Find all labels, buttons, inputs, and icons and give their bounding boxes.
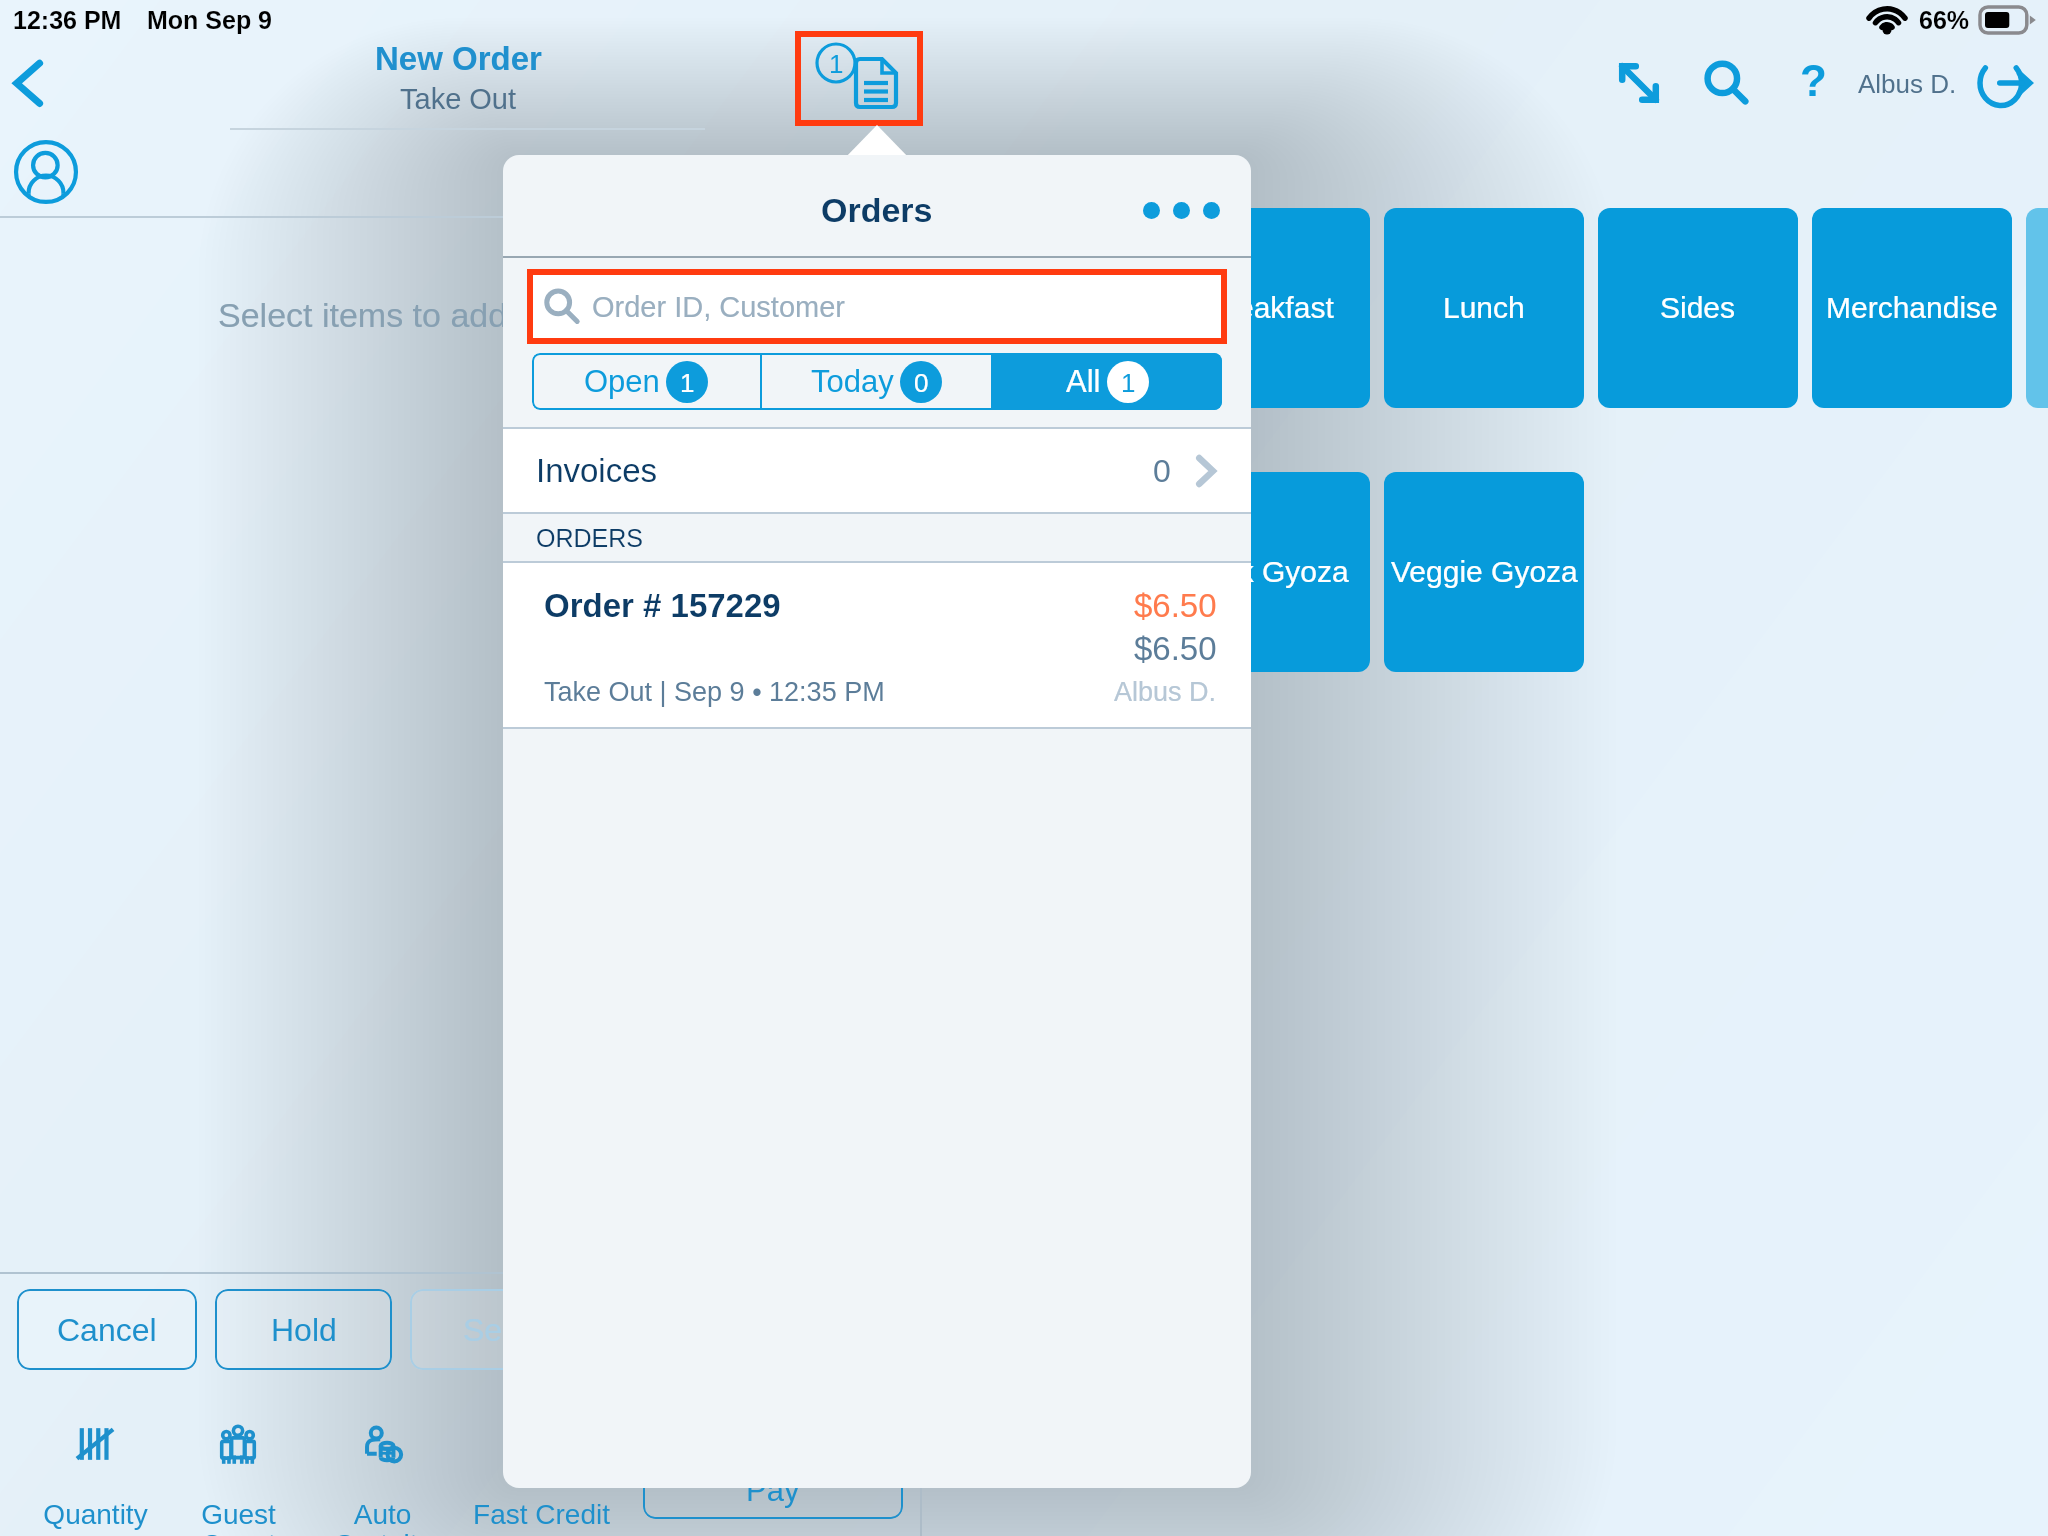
staticText: Albus D. <box>1114 677 1217 707</box>
button[interactable]: Expand <box>1609 53 1669 113</box>
staticText: Take Out | Sep 9 • 12:35 PM <box>544 677 885 707</box>
button[interactable] <box>1170 472 1370 672</box>
staticText: Veggie Gyoza <box>1391 555 1578 589</box>
staticText: 66% <box>1919 6 1970 34</box>
button[interactable]: Fast Credit <box>466 1422 616 1530</box>
staticText: 12:36 PM <box>13 6 122 34</box>
button[interactable]: Cancel <box>17 1289 197 1370</box>
staticText: Pay <box>746 1473 800 1508</box>
button[interactable]: Send <box>410 1289 590 1370</box>
staticText: 1 <box>1121 368 1136 397</box>
staticText: Pork Gyoza <box>1192 555 1349 589</box>
staticText: Orders <box>821 191 933 229</box>
staticText: Guest Count <box>201 1499 276 1536</box>
staticText: 0 <box>1153 453 1171 489</box>
staticText: Select items to add <box>218 296 508 334</box>
button[interactable]: Open orders <box>795 31 923 126</box>
staticText: Send <box>463 1312 538 1348</box>
button[interactable] <box>1170 208 1370 408</box>
staticText: ORDERS <box>536 524 643 552</box>
button[interactable]: More categories <box>2026 208 2048 408</box>
button[interactable] <box>1384 208 1584 408</box>
staticText: Lunch <box>1443 291 1525 325</box>
button[interactable]: Help <box>1783 50 1843 110</box>
button[interactable]: Quantity <box>20 1422 170 1530</box>
button[interactable]: Hold <box>215 1289 392 1370</box>
button[interactable]: Customer <box>14 140 78 204</box>
staticText: Open <box>584 364 660 399</box>
staticText: Order # 157229 <box>544 587 781 624</box>
other: Log out <box>1975 53 2037 113</box>
button[interactable]: Albus D. <box>1858 53 2037 113</box>
staticText: ? <box>1800 56 1827 105</box>
staticText: Sides <box>1660 291 1736 325</box>
staticText: Take Out <box>400 83 517 115</box>
staticText: $6.50 <box>1134 630 1217 667</box>
button[interactable]: Order # 157229 <box>503 563 1251 727</box>
button[interactable]: Auto Gratuity <box>307 1422 457 1536</box>
staticText: Auto Gratuity <box>333 1499 432 1536</box>
staticText: $6.50 <box>1134 587 1217 624</box>
button[interactable]: All <box>993 353 1222 410</box>
staticText: All <box>1066 364 1101 399</box>
staticText: Quantity <box>43 1499 148 1530</box>
staticText: Breakfast <box>1207 291 1334 325</box>
staticText: Invoices <box>536 452 658 489</box>
staticText: 0 <box>914 368 929 397</box>
staticText: Hold <box>271 1312 337 1348</box>
staticText: 1 <box>829 49 844 78</box>
staticText: Today <box>811 364 894 399</box>
button[interactable] <box>1812 208 2012 408</box>
staticText: Cancel <box>57 1312 157 1348</box>
button[interactable]: Back <box>0 50 66 116</box>
staticText: Merchandise <box>1826 291 1998 325</box>
button[interactable]: Search <box>1696 53 1756 113</box>
staticText: Fast Credit <box>473 1499 610 1530</box>
button[interactable]: Open <box>532 353 760 410</box>
button[interactable]: Pay <box>643 1462 903 1519</box>
button[interactable]: Guest Count <box>163 1422 313 1536</box>
button[interactable]: More options <box>1129 186 1233 234</box>
staticText: Mon Sep 9 <box>147 6 273 34</box>
button[interactable] <box>1384 472 1584 672</box>
staticText: New Order <box>375 40 542 77</box>
staticText: 1 <box>680 368 695 397</box>
button[interactable]: Order ID, Customer <box>527 269 1227 344</box>
button[interactable]: Invoices <box>536 429 1223 512</box>
button[interactable]: Today <box>762 353 991 410</box>
staticText: Order ID, Customer <box>592 291 845 323</box>
button[interactable] <box>1598 208 1798 408</box>
staticText: Albus D. <box>1858 69 1957 98</box>
